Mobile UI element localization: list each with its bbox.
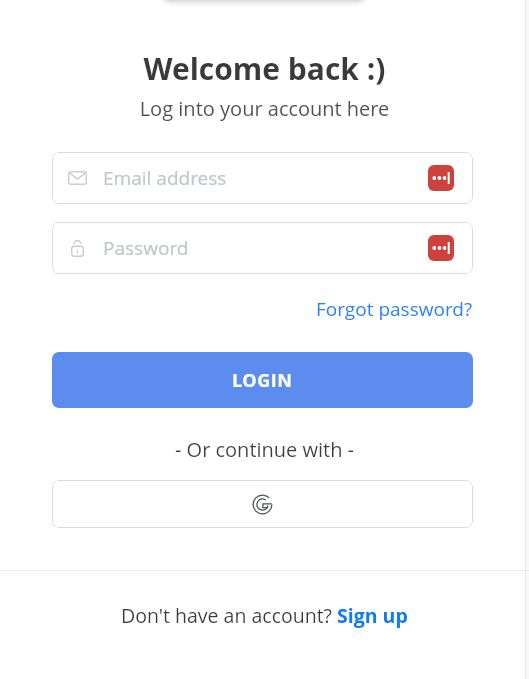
- staticText: Log into your account here: [0, 95, 529, 122]
- button[interactable]: Email address: [52, 152, 473, 204]
- button[interactable]: Sign up: [337, 602, 408, 629]
- button[interactable]: LOGIN: [52, 352, 473, 408]
- button[interactable]: Forgot password?: [316, 296, 473, 322]
- staticText: Welcome back :): [0, 48, 529, 89]
- staticText: - Or continue with -: [0, 436, 529, 463]
- button[interactable]: Password: [52, 222, 473, 274]
- staticText: Don't have an account?: [121, 602, 337, 629]
- staticText: Email address: [103, 165, 227, 191]
- button[interactable]: [52, 480, 473, 528]
- staticText: Password: [103, 235, 189, 261]
- staticText: LOGIN: [232, 368, 293, 393]
